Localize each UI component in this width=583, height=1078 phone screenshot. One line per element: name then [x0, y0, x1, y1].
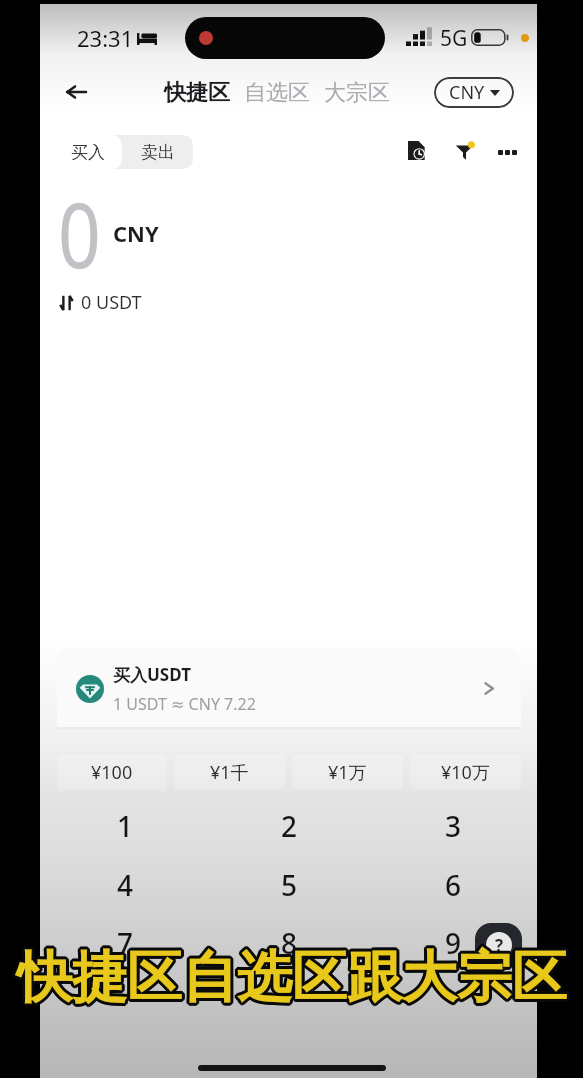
staticText: 6 — [445, 866, 462, 904]
staticText: ¥100 — [91, 760, 133, 785]
staticText: 8 — [281, 924, 298, 962]
staticText: 快捷区自选区跟大宗区 — [19, 943, 569, 1012]
button[interactable]: 4 — [85, 856, 165, 914]
staticText: 快捷区自选区跟大宗区 — [16, 943, 566, 1012]
button[interactable]: Back — [54, 70, 98, 114]
staticText: 买入 — [71, 142, 105, 163]
staticText: CNY — [113, 218, 159, 248]
staticText: 快捷区自选区跟大宗区 — [18, 941, 568, 1010]
staticText: 快捷区自选区跟大宗区 — [19, 941, 569, 1010]
button[interactable]: ¥100 — [57, 754, 167, 790]
staticText: 快捷区自选区跟大宗区 — [16, 945, 566, 1014]
staticText: CNY — [449, 80, 485, 105]
staticText: 3 — [445, 807, 462, 845]
staticText: ¥10万 — [441, 760, 490, 785]
staticText: 快捷区自选区跟大宗区 — [20, 944, 570, 1013]
button[interactable]: ¥10万 — [410, 754, 521, 790]
button[interactable]: 2 — [249, 797, 329, 855]
staticText: 1 — [117, 807, 134, 845]
staticText: 快捷区自选区跟大宗区 — [18, 943, 568, 1012]
staticText: 买入USDT — [113, 663, 191, 686]
staticText: 快捷区自选区跟大宗区 — [16, 941, 566, 1010]
staticText: 快捷区自选区跟大宗区 — [14, 944, 564, 1013]
staticText: 自选区 — [244, 79, 310, 107]
button[interactable]: 快捷区 — [157, 71, 237, 115]
staticText: 快捷区自选区跟大宗区 — [17, 941, 567, 1010]
button[interactable]: 买入 — [54, 135, 122, 169]
staticText: 快捷区自选区跟大宗区 — [17, 943, 567, 1012]
staticText: 快捷区自选区跟大宗区 — [15, 942, 565, 1011]
staticText: 快捷区自选区跟大宗区 — [17, 940, 567, 1009]
staticText: 5G — [440, 24, 468, 53]
button[interactable]: 3 — [413, 797, 493, 855]
button[interactable]: 6 — [413, 856, 493, 914]
staticText: 快捷区 — [164, 79, 230, 107]
staticText: ? — [495, 934, 504, 957]
staticText: 快捷区自选区跟大宗区 — [18, 940, 568, 1009]
button[interactable]: ¥1万 — [292, 754, 403, 790]
staticText: 快捷区自选区跟大宗区 — [19, 944, 569, 1013]
staticText: 快捷区自选区跟大宗区 — [17, 945, 567, 1014]
staticText: 快捷区自选区跟大宗区 — [14, 943, 564, 1012]
button[interactable]: 8 — [249, 914, 329, 972]
staticText: ¥1千 — [210, 760, 249, 785]
staticText: 快捷区自选区跟大宗区 — [20, 943, 570, 1012]
button[interactable]: 1 — [85, 797, 165, 855]
staticText: 快捷区自选区跟大宗区 — [18, 946, 568, 1015]
button[interactable]: 卖出 — [122, 135, 193, 169]
staticText: 大宗区 — [324, 79, 390, 107]
staticText: 快捷区自选区跟大宗区 — [18, 944, 568, 1013]
button[interactable]: More options — [487, 132, 527, 172]
staticText: 快捷区自选区跟大宗区 — [17, 944, 567, 1013]
staticText: 快捷区自选区跟大宗区 — [17, 946, 567, 1015]
button[interactable]: 大宗区 — [317, 71, 397, 115]
staticText: 快捷区自选区跟大宗区 — [18, 945, 568, 1014]
staticText: 9 — [445, 924, 462, 962]
button[interactable]: 买入USDT — [57, 648, 521, 729]
button[interactable]: Help — [475, 923, 522, 967]
button[interactable]: Filter — [444, 131, 484, 171]
staticText: 快捷区自选区跟大宗区 — [15, 945, 565, 1014]
staticText: 快捷区自选区跟大宗区 — [14, 942, 564, 1011]
staticText: 快捷区自选区跟大宗区 — [16, 944, 566, 1013]
staticText: 1 USDT ≈ CNY 7.22 — [113, 693, 256, 715]
staticText: 快捷区自选区跟大宗区 — [19, 945, 569, 1014]
button[interactable]: CNY — [434, 77, 514, 108]
staticText: 快捷区自选区跟大宗区 — [16, 940, 566, 1009]
button[interactable]: Order history — [396, 130, 436, 170]
button[interactable]: 9 — [413, 914, 493, 972]
staticText: 2 — [281, 807, 298, 845]
staticText: 0 — [58, 173, 101, 294]
button[interactable]: 5 — [249, 856, 329, 914]
button[interactable]: 7 — [85, 914, 165, 972]
button[interactable]: ¥1千 — [174, 754, 285, 790]
staticText: 快捷区自选区跟大宗区 — [20, 942, 570, 1011]
staticText: 快捷区自选区跟大宗区 — [16, 946, 566, 1015]
staticText: 卖出 — [141, 142, 175, 163]
staticText: 快捷区自选区跟大宗区 — [18, 942, 568, 1011]
staticText: 快捷区自选区跟大宗区 — [19, 942, 569, 1011]
staticText: ¥1万 — [328, 760, 367, 785]
staticText: 快捷区自选区跟大宗区 — [15, 943, 565, 1012]
staticText: 7 — [117, 924, 134, 962]
staticText: 快捷区自选区跟大宗区 — [16, 942, 566, 1011]
staticText: 0 USDT — [81, 290, 142, 315]
staticText: 快捷区自选区跟大宗区 — [17, 942, 567, 1011]
button[interactable]: 自选区 — [237, 71, 317, 115]
staticText: 23:31 — [77, 23, 134, 53]
staticText: 快捷区自选区跟大宗区 — [15, 941, 565, 1010]
staticText: 5 — [281, 866, 298, 904]
staticText: 4 — [117, 866, 134, 904]
staticText: 快捷区自选区跟大宗区 — [15, 944, 565, 1013]
